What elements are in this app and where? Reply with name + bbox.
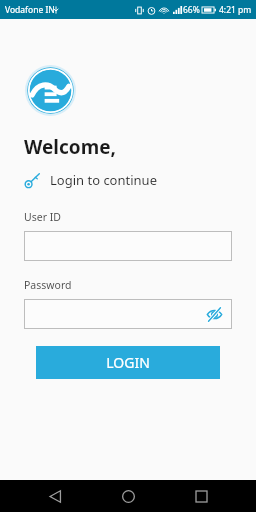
button[interactable]: Show password [204, 304, 224, 324]
staticText: LOGIN [106, 353, 150, 372]
button[interactable]: Home [110, 480, 146, 512]
staticText: Welcome, [24, 134, 116, 160]
button[interactable]: Show password [24, 299, 232, 329]
button[interactable]: LOGIN [36, 346, 220, 379]
button[interactable] [24, 231, 232, 261]
staticText: Password [24, 278, 72, 292]
staticText: 66% [183, 4, 200, 16]
button[interactable]: Recent apps [183, 480, 219, 512]
staticText: Vodafone IN [5, 4, 55, 16]
staticText: 4:21 pm [219, 4, 252, 16]
staticText: User ID [24, 210, 61, 224]
button[interactable]: Back [37, 480, 73, 512]
staticText: Login to continue [50, 171, 157, 189]
